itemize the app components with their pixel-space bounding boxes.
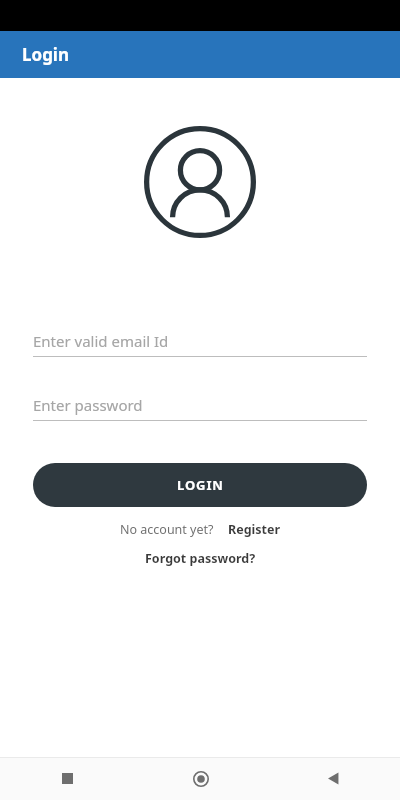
other: User avatar: [144, 126, 256, 238]
button[interactable]: Recent apps: [0, 773, 134, 784]
button[interactable]: Register: [228, 521, 281, 538]
staticText: No account yet?: [120, 521, 214, 538]
staticText: Register: [228, 521, 281, 538]
button[interactable]: Back: [267, 772, 400, 785]
staticText: Enter valid email Id: [33, 331, 169, 351]
staticText: Forgot password?: [145, 550, 256, 567]
button[interactable]: Home: [134, 771, 267, 787]
button[interactable]: Enter password: [33, 394, 367, 421]
staticText: Login: [22, 43, 70, 66]
button[interactable]: Forgot password?: [141, 550, 260, 567]
staticText: Enter password: [33, 395, 143, 415]
button[interactable]: LOGIN: [33, 463, 367, 507]
staticText: LOGIN: [177, 476, 224, 494]
button[interactable]: Enter valid email Id: [33, 330, 367, 357]
